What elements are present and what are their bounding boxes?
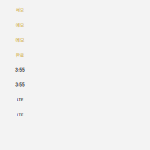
staticText: 3:55: [0, 56, 44, 84]
staticText: 완료: [0, 39, 41, 71]
staticText: 메모: [0, 9, 41, 41]
staticText: 메모: [0, 0, 40, 25]
staticText: 3:55: [0, 67, 51, 103]
staticText: LTE: [4, 89, 36, 111]
staticText: 메모: [0, 21, 45, 59]
staticText: LTE: [1, 102, 38, 128]
